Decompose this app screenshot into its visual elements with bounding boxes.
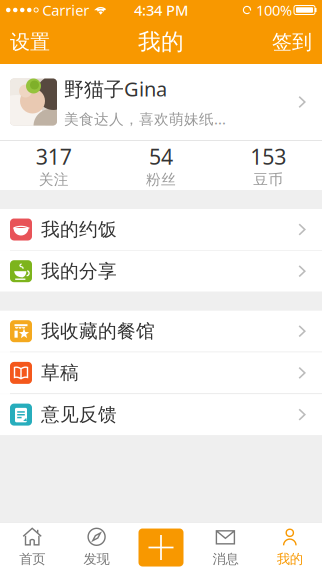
staticText: 设置 bbox=[10, 30, 50, 54]
staticText: 4:34 PM bbox=[134, 0, 188, 20]
button[interactable]: 签到 bbox=[272, 20, 322, 64]
staticText: 草稿 bbox=[41, 361, 79, 384]
staticText: 豆币 bbox=[253, 171, 283, 189]
button[interactable]: 54 bbox=[107, 141, 215, 190]
staticText: 消息 bbox=[212, 551, 238, 567]
staticText: 签到 bbox=[272, 30, 312, 54]
button[interactable]: 我的约饭 bbox=[0, 209, 322, 250]
button[interactable]: 首页 bbox=[0, 522, 64, 570]
button[interactable]: 我收藏的餐馆 bbox=[0, 311, 322, 352]
staticText: 粉丝 bbox=[146, 171, 176, 189]
button[interactable]: 317 bbox=[0, 141, 107, 190]
staticText: 我的 bbox=[277, 551, 303, 567]
staticText: 我的约饭 bbox=[41, 218, 117, 241]
staticText: 我收藏的餐馆 bbox=[41, 320, 155, 343]
staticText: 100% bbox=[256, 0, 292, 20]
staticText: 发现 bbox=[84, 551, 110, 567]
staticText: 我的分享 bbox=[41, 260, 117, 283]
button[interactable]: 设置 bbox=[0, 20, 50, 64]
button[interactable]: 消息 bbox=[193, 522, 258, 570]
button[interactable]: 153 bbox=[215, 141, 322, 190]
button[interactable]: 意见反馈 bbox=[0, 394, 322, 435]
staticText: 我的 bbox=[138, 28, 184, 56]
staticText: Carrier bbox=[42, 0, 89, 20]
staticText: 关注 bbox=[39, 171, 69, 189]
staticText: 首页 bbox=[19, 551, 45, 567]
button[interactable]: 草稿 bbox=[0, 352, 322, 393]
staticText: 54 bbox=[149, 142, 173, 171]
button[interactable]: 发布 bbox=[129, 522, 193, 570]
staticText: 野猫子Gina bbox=[64, 75, 167, 102]
staticText: 意见反馈 bbox=[41, 403, 117, 426]
staticText: 317 bbox=[36, 142, 72, 171]
button[interactable]: 我的分享 bbox=[0, 251, 322, 292]
staticText: 美食达人，喜欢萌妹纸... bbox=[64, 109, 226, 128]
button[interactable]: 发现 bbox=[64, 522, 129, 570]
staticText: 153 bbox=[250, 142, 286, 171]
button[interactable]: 我的 bbox=[258, 522, 322, 570]
button[interactable]: 野猫子Gina bbox=[0, 64, 322, 140]
